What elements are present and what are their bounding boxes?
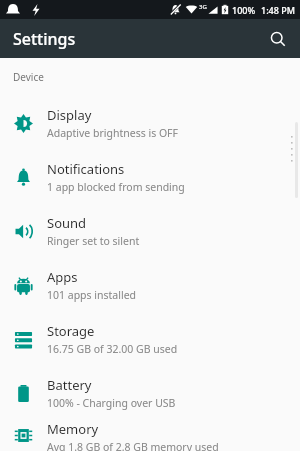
staticText: Display [47,106,92,124]
button[interactable]: Display [0,96,300,150]
staticText: 100% - Charging over USB [47,396,176,410]
staticText: 3G [199,3,207,11]
staticText: Notifications [47,160,125,178]
staticText: Settings [13,28,76,50]
staticText: Storage [47,322,95,340]
button[interactable]: Apps [0,258,300,312]
staticText: 1:48 PM [261,4,295,16]
staticText: Sound [47,214,87,232]
button[interactable]: Storage [0,312,300,366]
staticText: Ringer set to silent [47,234,140,248]
staticText: 16.75 GB of 32.00 GB used [47,342,178,356]
staticText: Adaptive brightness is OFF [47,126,179,140]
button[interactable]: Notifications [0,150,300,204]
button[interactable]: Memory [0,420,300,451]
button[interactable]: Battery [0,366,300,420]
button[interactable]: Search [262,23,294,55]
staticText: Avg 1.8 GB of 2.8 GB memory used [47,440,219,451]
staticText: 100% [232,4,256,16]
staticText: 1 app blocked from sending [47,180,185,194]
staticText: Battery [47,376,92,394]
staticText: Memory [47,420,99,438]
button[interactable]: Sound [0,204,300,258]
staticText: Device [13,70,44,84]
staticText: 101 apps installed [47,288,137,302]
staticText: Apps [47,268,78,286]
